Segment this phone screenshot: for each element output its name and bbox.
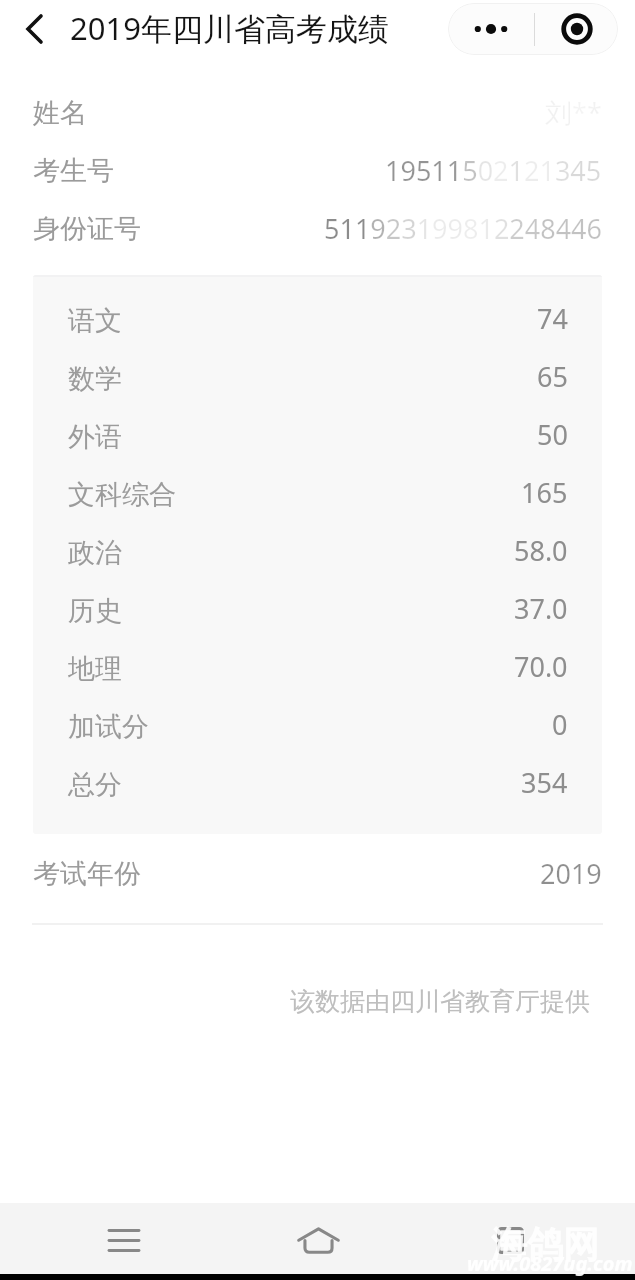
staticText: 74 (537, 300, 568, 337)
staticText: 文科综合 (68, 478, 176, 512)
staticText: 19511502121345 (385, 152, 602, 189)
staticText: 外语 (68, 420, 122, 454)
button[interactable]: Menu (94, 1209, 154, 1269)
staticText: 70.0 (514, 648, 568, 685)
staticText: 58.0 (514, 532, 568, 569)
staticText: 0 (552, 706, 568, 743)
button[interactable]: More options and close (448, 3, 618, 55)
staticText: 历史 (68, 594, 122, 628)
staticText: 考生号 (33, 154, 114, 188)
staticText: 65 (537, 358, 568, 395)
staticText: 姓名 (33, 96, 87, 130)
staticText: 数学 (68, 362, 122, 396)
staticText: 354 (521, 764, 568, 801)
staticText: 50 (537, 416, 568, 453)
button[interactable]: Recent apps (480, 1210, 540, 1270)
staticText: 2019 (540, 855, 602, 892)
staticText: 地理 (68, 652, 122, 686)
staticText: 语文 (68, 304, 122, 338)
staticText: 刘** (545, 94, 602, 131)
button[interactable]: Home (286, 1208, 350, 1272)
staticText: 政治 (68, 536, 122, 570)
staticText: 加试分 (68, 710, 149, 744)
staticText: 37.0 (514, 590, 568, 627)
staticText: 该数据由四川省教育厅提供 (0, 986, 590, 1017)
staticText: 总分 (68, 768, 122, 802)
staticText: 考试年份 (33, 857, 141, 891)
staticText: 身份证号 (33, 212, 141, 246)
staticText: 165 (521, 474, 568, 511)
button[interactable]: Back (8, 3, 60, 55)
staticText: www.0827ug.com (467, 1250, 633, 1277)
staticText: 2019年四川省高考成绩 (70, 7, 389, 49)
staticText: 海鸽网 (491, 1222, 599, 1267)
staticText: 511923199812248446 (324, 210, 602, 247)
